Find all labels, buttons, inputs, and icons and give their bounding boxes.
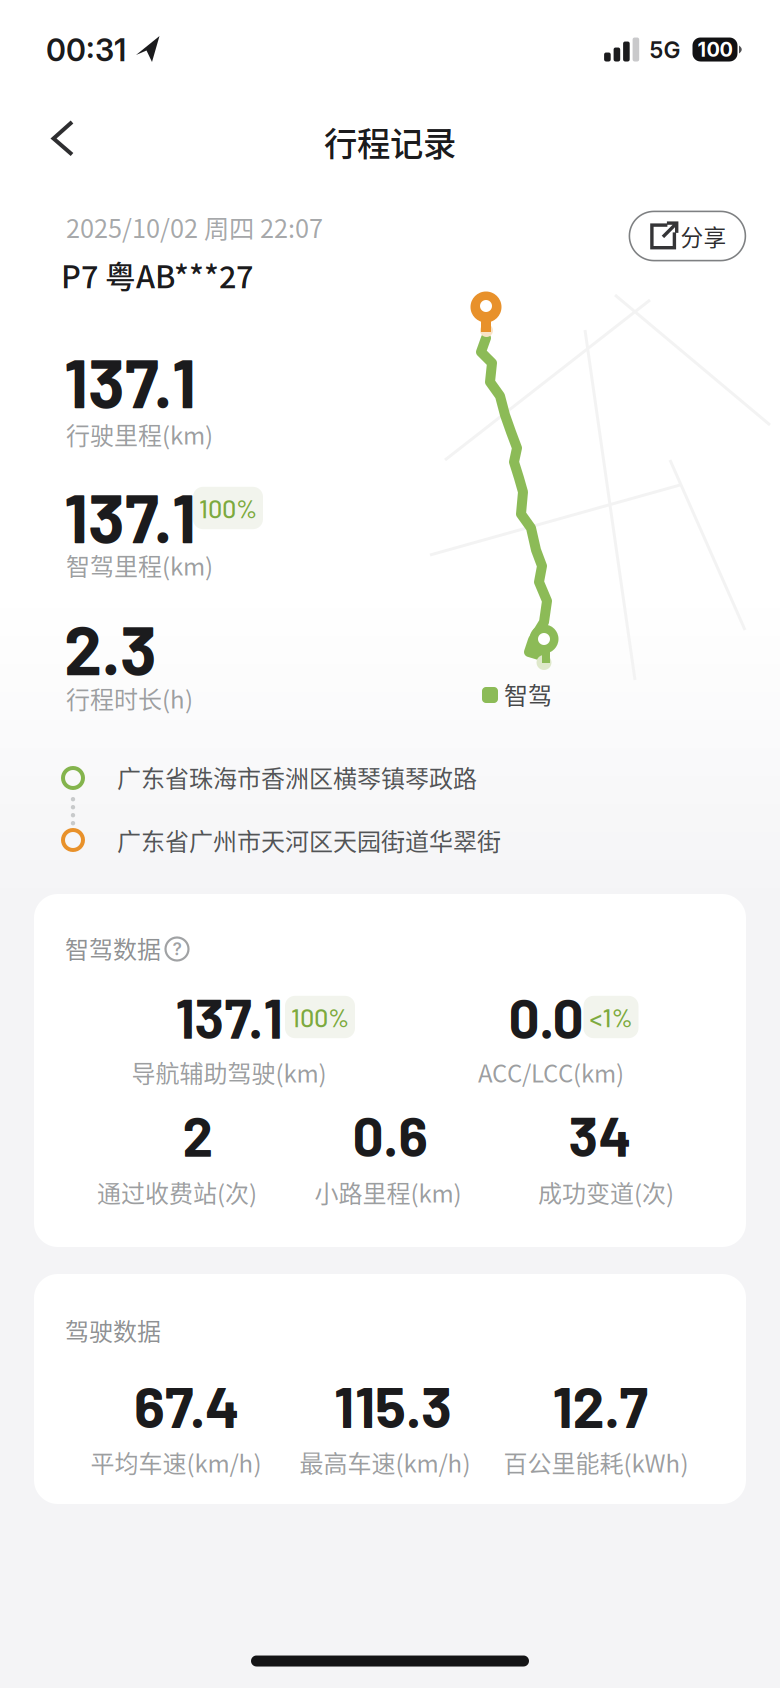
staticText: 100%: [199, 493, 257, 523]
staticText: 广东省珠海市香洲区横琴镇琴政路: [117, 760, 477, 794]
staticText: 百公里能耗(kWh): [503, 1445, 688, 1479]
staticText: 小路里程(km): [314, 1175, 461, 1209]
staticText: 行程记录: [324, 117, 456, 166]
staticText: 2025/10/02 周四 22:07: [66, 209, 323, 245]
staticText: 智驾: [504, 677, 552, 711]
staticText: 成功变道(次): [538, 1175, 674, 1209]
staticText: ?: [172, 938, 181, 959]
staticText: 分享: [680, 220, 726, 252]
button[interactable]: 分享: [629, 211, 745, 261]
staticText: <1%: [589, 1002, 632, 1032]
staticText: 12.7: [552, 1371, 647, 1439]
staticText: 行程时长(h): [66, 681, 193, 715]
staticText: 137.1: [175, 984, 282, 1050]
staticText: P7 粤AB***27: [61, 253, 253, 297]
staticText: 0.6: [352, 1102, 427, 1168]
staticText: 5G: [649, 36, 680, 64]
staticText: 2.3: [64, 607, 157, 689]
staticText: 0.0: [508, 984, 583, 1050]
staticText: 115.3: [334, 1371, 452, 1439]
staticText: 智驾里程(km): [66, 548, 213, 582]
staticText: 34: [568, 1102, 631, 1168]
staticText: 最高车速(km/h): [299, 1445, 470, 1479]
staticText: 智驾数据: [65, 931, 161, 965]
staticText: 2: [182, 1102, 213, 1168]
staticText: ACC/LCC(km): [478, 1055, 624, 1089]
staticText: 00:31: [46, 31, 126, 68]
button[interactable]: Back: [32, 106, 96, 170]
staticText: 67.4: [134, 1371, 240, 1439]
staticText: 平均车速(km/h): [90, 1445, 261, 1479]
staticText: 行驶里程(km): [66, 417, 213, 451]
staticText: 驾驶数据: [65, 1313, 161, 1347]
staticText: 导航辅助驾驶(km): [131, 1055, 326, 1089]
staticText: 137.1: [64, 475, 196, 557]
staticText: 137.1: [64, 340, 196, 422]
button[interactable]: 智驾数据说明: [162, 934, 192, 964]
staticText: 100%: [291, 1002, 349, 1032]
staticText: 通过收费站(次): [97, 1175, 257, 1209]
staticText: 100: [697, 37, 732, 62]
staticText: 广东省广州市天河区天园街道华翠街: [117, 823, 501, 857]
